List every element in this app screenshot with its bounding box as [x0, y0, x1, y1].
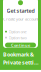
staticText: Create your account	[3, 16, 38, 22]
staticText: Private settings	[3, 59, 41, 66]
staticText: Get started	[6, 7, 34, 14]
staticText: Bookmark &	[3, 51, 34, 58]
staticText: Option two	[8, 35, 26, 40]
button[interactable]: Continue	[5, 43, 36, 48]
staticText: Continue	[11, 42, 30, 48]
staticText: Option one	[8, 29, 26, 34]
